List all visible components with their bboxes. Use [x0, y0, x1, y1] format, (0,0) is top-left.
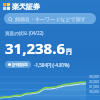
- staticText: 評価損益: [12, 62, 28, 67]
- staticText: 32,000: [89, 80, 99, 84]
- other: Info: [8, 63, 11, 66]
- staticText: 銘柄名・キーワードなどで探す: [15, 16, 86, 22]
- other: Search: [8, 17, 13, 22]
- staticText: 資産の状況 (04/22): [5, 30, 44, 36]
- button[interactable]: Search: [4, 13, 96, 24]
- button[interactable]: Info: [5, 61, 31, 68]
- staticText: 33,000: [89, 75, 99, 79]
- button[interactable]: App logo: [0, 0, 100, 13]
- button[interactable]: 33,000: [0, 72, 100, 100]
- staticText: 31,000: [89, 85, 99, 89]
- staticText: 円: [66, 48, 72, 56]
- staticText: 30,000: [89, 90, 99, 94]
- staticText: 楽天証券: [12, 2, 40, 11]
- other: App logo: [3, 3, 10, 10]
- staticText: -1,584円 (-4.81%): [34, 62, 70, 68]
- staticText: 31,238.6: [5, 38, 65, 58]
